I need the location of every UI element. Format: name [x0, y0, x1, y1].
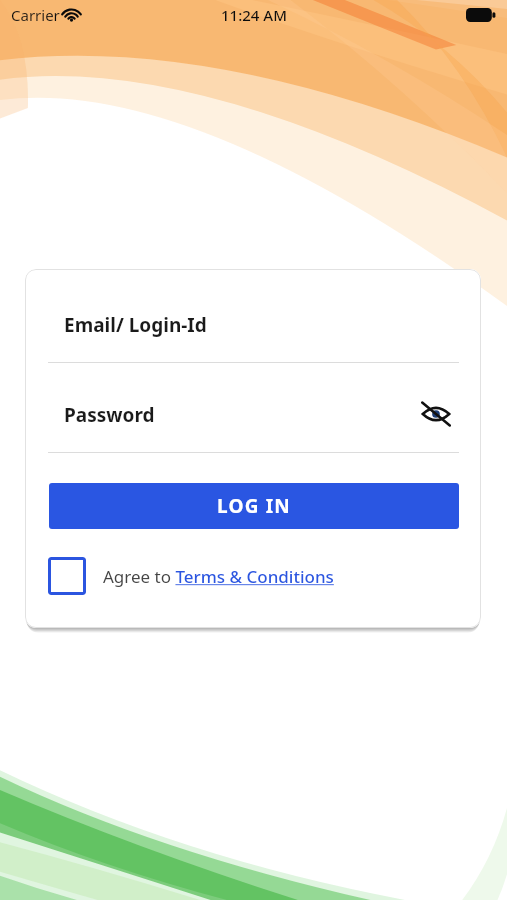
button[interactable]: LOG IN	[49, 483, 459, 529]
staticText: Email/ Login-Id	[64, 312, 207, 338]
staticText: Password	[64, 402, 155, 428]
button[interactable]: Show password	[416, 394, 456, 434]
staticText: LOG IN	[217, 493, 292, 519]
staticText: 11:24 AM	[221, 5, 287, 25]
button[interactable]: Email/ Login-Id	[48, 293, 459, 363]
button[interactable]: Agree to Terms & Conditions	[48, 554, 334, 598]
button[interactable]: Password	[48, 383, 459, 453]
staticText: Carrier	[11, 5, 60, 25]
staticText: Agree to Terms & Conditions	[103, 565, 334, 588]
